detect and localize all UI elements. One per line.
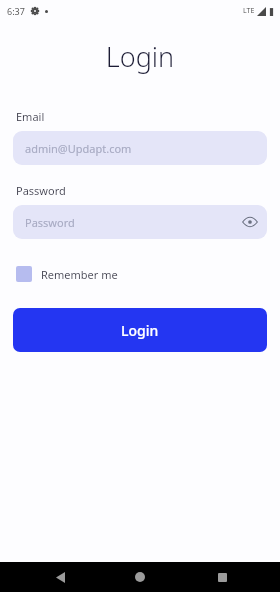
staticText: Password: [25, 215, 75, 230]
staticText: admin@Updapt.com: [25, 141, 132, 156]
button[interactable]: Recent apps: [208, 563, 236, 591]
staticText: Password: [16, 183, 66, 198]
staticText: 6:37: [7, 5, 25, 17]
button[interactable]: admin@Updapt.com: [13, 131, 267, 165]
staticText: Login: [121, 321, 159, 340]
button[interactable]: Home: [126, 563, 154, 591]
button[interactable]: Password: [13, 205, 267, 239]
staticText: LTE: [243, 6, 255, 16]
staticText: Login: [0, 38, 280, 75]
button[interactable]: Login: [13, 308, 267, 352]
button[interactable]: Show password: [238, 210, 262, 234]
staticText: Email: [16, 109, 45, 124]
button[interactable]: Remember me: [14, 262, 120, 286]
staticText: Remember me: [41, 267, 118, 282]
button[interactable]: Back: [46, 563, 74, 591]
